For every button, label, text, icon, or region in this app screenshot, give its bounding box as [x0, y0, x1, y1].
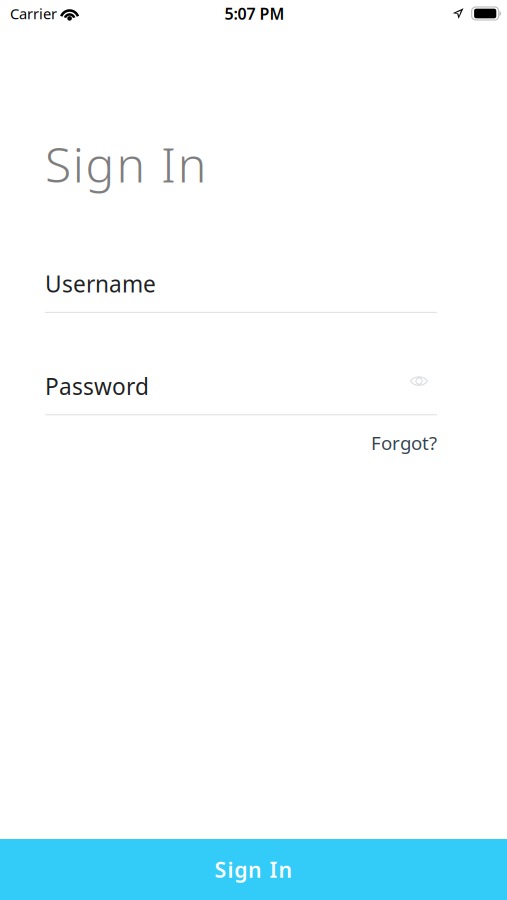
button[interactable]: Show password [409, 372, 437, 401]
staticText: Carrier [10, 4, 57, 23]
staticText: Forgot? [371, 430, 437, 455]
staticText: Password [45, 371, 149, 401]
staticText: Sign In [45, 132, 207, 196]
button[interactable]: Sign In [0, 839, 507, 900]
staticText: Username [45, 269, 156, 299]
staticText: Sign In [215, 855, 292, 884]
staticText: 5:07 PM [224, 3, 284, 24]
button[interactable]: Forgot? [371, 430, 437, 455]
